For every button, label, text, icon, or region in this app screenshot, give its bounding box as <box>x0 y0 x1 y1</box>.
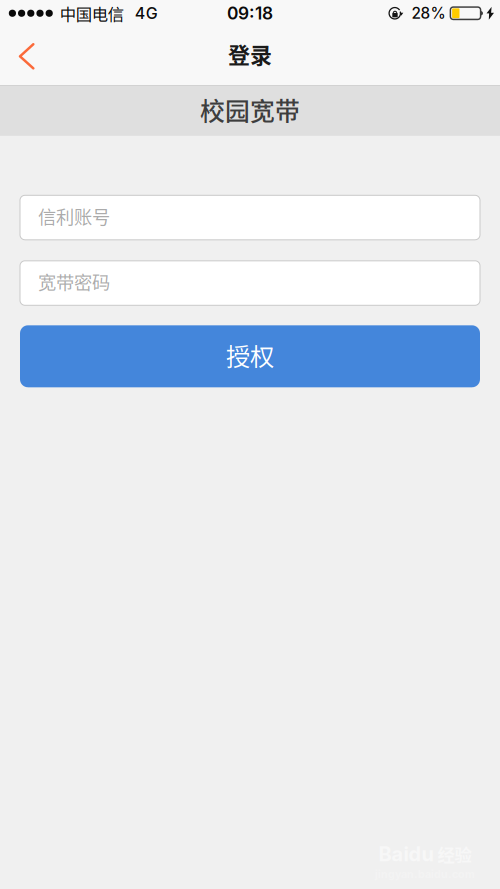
staticText: 宽带密码 <box>38 268 110 295</box>
staticText: 09:18 <box>227 3 273 24</box>
staticText: 校园宽带 <box>200 92 300 128</box>
staticText: 28% <box>411 4 445 23</box>
staticText: 4G <box>135 4 158 23</box>
button[interactable]: 返回 <box>0 31 51 81</box>
staticText: 授权 <box>226 337 274 372</box>
staticText: 登录 <box>228 38 272 70</box>
staticText: 中国电信 <box>60 1 124 25</box>
button[interactable]: 授权 <box>20 325 480 387</box>
button[interactable]: 宽带密码 <box>20 261 480 305</box>
button[interactable]: 信利账号 <box>20 195 480 240</box>
staticText: 信利账号 <box>38 203 110 229</box>
